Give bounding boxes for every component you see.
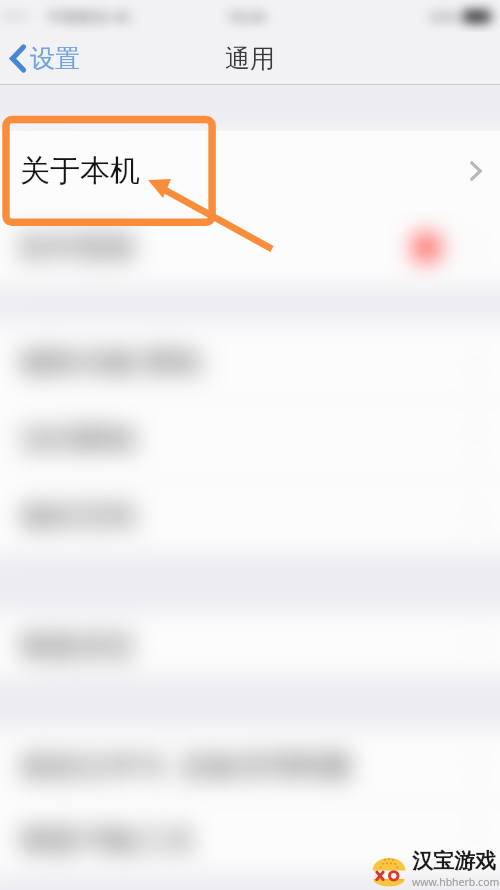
staticText: 汉宝游戏: [412, 848, 496, 874]
button[interactable]: 访问限制: [0, 400, 500, 478]
staticText: 描述文件与 设备管理档案: [20, 745, 355, 785]
button[interactable]: 软件更新: [0, 207, 500, 288]
staticText: 键盘与输入法: [20, 821, 194, 858]
staticText: 10:24: [227, 6, 266, 26]
button[interactable]: 键盘与输入法: [0, 802, 500, 876]
button[interactable]: 关于本机: [0, 131, 500, 207]
other: Open About: [470, 161, 482, 181]
staticText: 关于本机: [20, 151, 136, 188]
staticText: 中国移动 4G: [47, 6, 131, 26]
staticText: 键盘设定: [20, 627, 136, 664]
staticText: 设置: [30, 43, 80, 74]
staticText: 关于本机: [20, 152, 140, 190]
button[interactable]: 辅助功能 限制: [0, 322, 500, 400]
staticText: 通用: [225, 43, 275, 74]
staticText: 访问限制: [20, 421, 136, 458]
button[interactable]: 描述文件与 设备管理档案: [0, 728, 500, 802]
staticText: 辅助功能 限制: [20, 341, 202, 381]
staticText: 软件更新: [20, 229, 136, 266]
staticText: 63%: [430, 7, 458, 26]
button[interactable]: 关于本机: [0, 131, 500, 211]
staticText: 储存空间: [20, 498, 136, 535]
button[interactable]: 键盘设定: [0, 612, 500, 678]
button[interactable]: 储存空间: [0, 478, 500, 555]
other: Site logo: [372, 850, 406, 888]
staticText: www.hbherb.com: [412, 875, 500, 889]
button[interactable]: 设置: [9, 43, 80, 74]
